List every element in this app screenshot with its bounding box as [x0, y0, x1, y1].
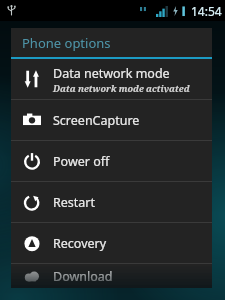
other: Restart	[23, 193, 41, 211]
other: Power off	[23, 152, 41, 170]
other: Download	[23, 267, 41, 285]
staticText: Power off	[53, 153, 110, 170]
staticText: Recovery	[53, 235, 107, 252]
staticText: Download	[53, 268, 113, 285]
button[interactable]: Download	[11, 264, 212, 288]
staticText: Phone options	[22, 34, 111, 52]
button[interactable]: Data network mode	[11, 59, 212, 99]
button[interactable]: ScreenCapture	[11, 100, 212, 140]
button[interactable]: Recovery	[11, 223, 212, 263]
button[interactable]: Restart	[11, 182, 212, 222]
staticText: Data network mode	[53, 65, 170, 82]
other: Data network mode	[23, 70, 41, 88]
other: ScreenCapture	[23, 111, 41, 129]
other: Recovery	[23, 234, 41, 252]
staticText: ScreenCapture	[53, 112, 140, 129]
staticText: Restart	[53, 194, 96, 211]
staticText: Data network mode activated	[53, 82, 190, 94]
staticText: 14:54	[191, 3, 222, 19]
button[interactable]: Power off	[11, 141, 212, 181]
